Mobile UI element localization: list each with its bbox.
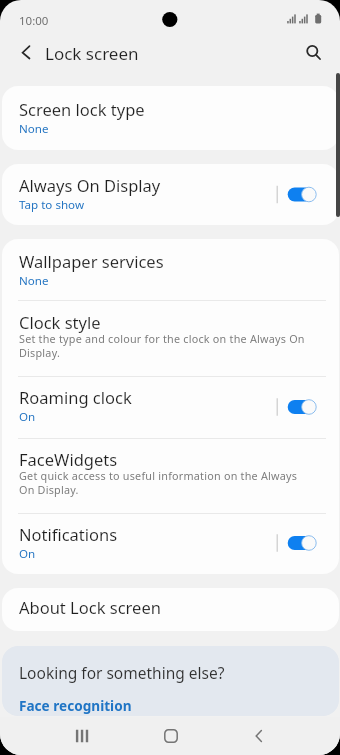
button[interactable]: Back xyxy=(239,722,279,750)
staticText: On xyxy=(19,546,36,562)
staticText: Looking for something else? xyxy=(19,662,225,683)
button[interactable]: Back xyxy=(9,39,37,67)
button[interactable]: Toggle Roaming clock xyxy=(274,376,332,438)
staticText: FaceWidgets xyxy=(19,448,118,470)
button[interactable]: Notifications xyxy=(2,513,339,573)
staticText: Get quick access to useful information o… xyxy=(19,468,309,497)
button[interactable]: Clock style xyxy=(2,300,339,376)
staticText: Tap to show xyxy=(19,197,84,213)
button[interactable]: Wallpaper services xyxy=(2,239,339,300)
button[interactable]: Recent apps xyxy=(62,722,102,750)
button[interactable]: Roaming clock xyxy=(2,376,339,438)
button[interactable]: FaceWidgets xyxy=(2,438,339,514)
staticText: Lock screen xyxy=(45,42,139,65)
button[interactable]: Screen lock type xyxy=(2,86,339,150)
button[interactable]: Toggle Notifications xyxy=(274,513,332,573)
staticText: Face recognition xyxy=(19,696,132,715)
button[interactable]: Always On Display xyxy=(2,164,339,225)
staticText: About Lock screen xyxy=(19,596,161,618)
button[interactable]: About Lock screen xyxy=(2,588,339,631)
button[interactable]: Home xyxy=(151,722,191,750)
staticText: Clock style xyxy=(19,311,101,333)
button[interactable]: Face recognition xyxy=(19,696,132,715)
staticText: Notifications xyxy=(19,523,118,545)
staticText: None xyxy=(19,121,49,137)
staticText: Always On Display xyxy=(19,174,161,196)
staticText: Wallpaper services xyxy=(19,250,164,272)
staticText: Roaming clock xyxy=(19,386,132,408)
staticText: None xyxy=(19,273,49,289)
staticText: On xyxy=(19,409,36,425)
staticText: Set the type and colour for the clock on… xyxy=(19,331,309,360)
button[interactable]: Search xyxy=(298,37,326,65)
staticText: 10:00 xyxy=(19,13,49,29)
button[interactable]: Toggle Always On Display xyxy=(274,164,332,225)
staticText: Screen lock type xyxy=(19,98,145,120)
